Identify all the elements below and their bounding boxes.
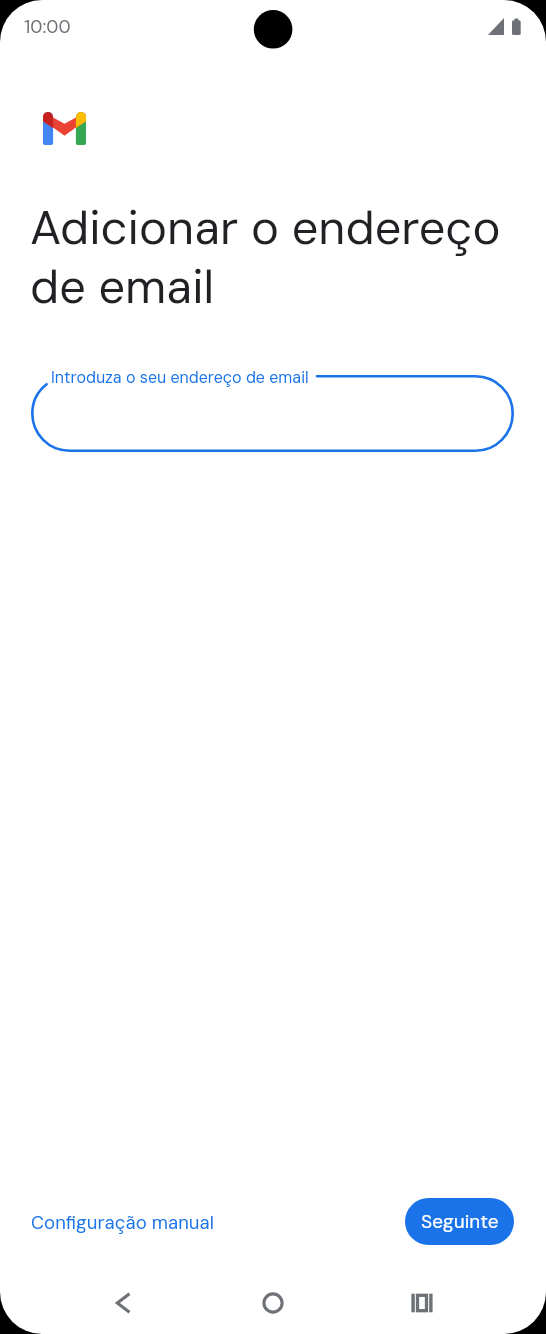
staticText: Configuração manual — [31, 1211, 214, 1235]
staticText: Adicionar o endereço de email — [30, 197, 520, 318]
staticText: Seguinte — [421, 1209, 499, 1234]
staticText: 10:00 — [24, 15, 71, 39]
button[interactable]: Seguinte — [405, 1198, 514, 1245]
staticText: Introduza o seu endereço de email — [51, 367, 309, 388]
button[interactable]: Configuração manual — [19, 1199, 225, 1246]
button[interactable]: Introduza o seu endereço de email — [31, 375, 514, 452]
button[interactable]: Back — [100, 1280, 145, 1325]
button[interactable]: Home — [250, 1280, 295, 1325]
button[interactable]: Recent apps — [399, 1280, 444, 1325]
